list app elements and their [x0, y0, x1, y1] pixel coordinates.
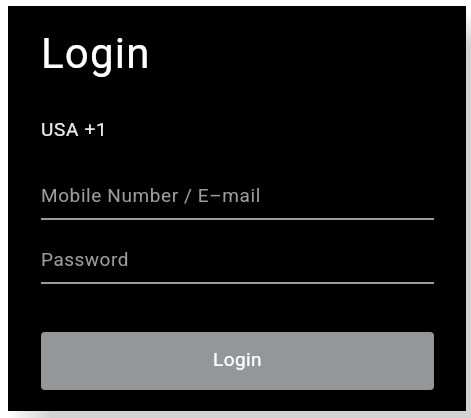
button[interactable]: Password [41, 240, 434, 284]
staticText: USA +1 [41, 118, 108, 140]
staticText: Login [41, 29, 151, 78]
button[interactable]: Mobile Number / E–mail [41, 176, 434, 219]
button[interactable]: Login [41, 332, 434, 390]
staticText: Mobile Number / E–mail [41, 184, 261, 206]
staticText: Password [41, 248, 129, 270]
staticText: Login [213, 348, 262, 370]
button[interactable]: USA +1 [41, 111, 434, 145]
